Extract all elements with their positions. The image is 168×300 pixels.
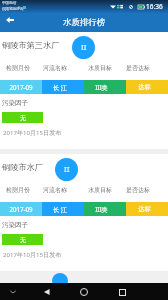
staticText: 达标 <box>138 205 151 213</box>
staticText: 无 <box>20 114 26 122</box>
staticText: 达标 <box>138 83 151 91</box>
staticText: 铜陵市第三水厂 <box>2 40 60 50</box>
button[interactable]: 铜陵市水厂 <box>0 154 168 271</box>
button[interactable]: Home <box>76 284 92 300</box>
button[interactable]: Hide keyboard <box>5 284 21 300</box>
button[interactable]: Back <box>1 11 19 29</box>
staticText: 检测月份 <box>6 64 30 72</box>
staticText: 水质排行榜 <box>63 17 106 28</box>
staticText: 水质目标 <box>88 64 112 72</box>
staticText: III类 <box>95 205 108 213</box>
staticText: 污染因子 <box>2 221 28 229</box>
staticText: 河流名称 <box>43 64 67 72</box>
staticText: 2017-09 <box>9 205 33 213</box>
staticText: 是否达标 <box>126 186 150 194</box>
staticText: 污染因子 <box>2 99 28 107</box>
staticText: 水质目标 <box>88 186 112 194</box>
staticText: 中国电信 <box>2 1 17 6</box>
staticText: III类 <box>95 83 108 91</box>
staticText: 长 江 <box>53 83 67 91</box>
staticText: 2017年10月15日发布 <box>3 128 62 136</box>
staticText: 16:36 <box>146 2 163 11</box>
button[interactable]: 铜陵市第三水厂 <box>0 32 168 149</box>
button[interactable]: Recent apps <box>114 284 130 300</box>
staticText: 河流名称 <box>43 186 67 194</box>
staticText: 2017-09 <box>9 83 33 91</box>
staticText: 铜陵市水厂 <box>2 162 43 172</box>
staticText: 是否达标 <box>126 64 150 72</box>
staticText: 长 江 <box>53 205 67 213</box>
staticText: 2017年10月15日发布 <box>3 250 62 258</box>
button[interactable]: Back <box>39 284 55 300</box>
staticText: 仅限紧急呼叫 <box>2 7 24 12</box>
staticText: II <box>64 165 70 175</box>
staticText: 检测月份 <box>6 186 30 194</box>
staticText: 无 <box>20 236 26 244</box>
staticText: II <box>81 43 87 53</box>
